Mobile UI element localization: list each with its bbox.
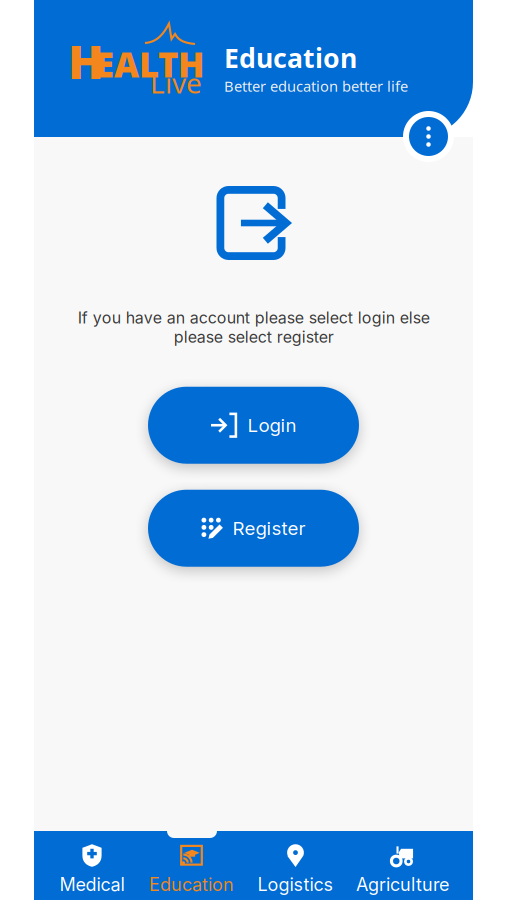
- button[interactable]: More options: [403, 111, 454, 162]
- button[interactable]: Medical: [47, 818, 137, 900]
- button[interactable]: Agriculture: [345, 818, 460, 900]
- staticText: EALTH: [95, 41, 205, 87]
- staticText: Medical: [59, 873, 124, 895]
- staticText: Logistics: [257, 873, 333, 895]
- staticText: Education: [149, 873, 234, 895]
- staticText: Live: [150, 64, 202, 101]
- button[interactable]: Education: [137, 818, 246, 900]
- staticText: Register: [232, 517, 305, 539]
- staticText: If you have an account please select log…: [77, 308, 429, 347]
- button[interactable]: Register: [148, 490, 359, 567]
- button[interactable]: Logistics: [246, 818, 345, 900]
- staticText: Better education better life: [224, 76, 408, 96]
- button[interactable]: Login: [148, 387, 359, 464]
- staticText: H: [68, 30, 104, 92]
- staticText: Agriculture: [356, 873, 449, 895]
- staticText: Login: [247, 414, 296, 436]
- staticText: Education: [224, 40, 357, 75]
